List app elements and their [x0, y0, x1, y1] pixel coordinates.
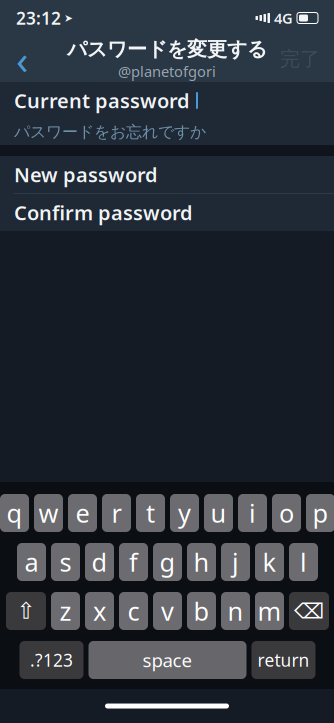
- button[interactable]: .?123: [19, 641, 83, 679]
- button[interactable]: d: [85, 543, 114, 581]
- button[interactable]: m: [255, 592, 284, 630]
- staticText: return: [257, 648, 309, 671]
- staticText: e: [75, 496, 89, 530]
- staticText: z: [59, 594, 71, 628]
- button[interactable]: h: [187, 543, 216, 581]
- staticText: パスワードをお忘れですか: [14, 122, 206, 142]
- button[interactable]: k: [255, 543, 284, 581]
- staticText: Confirm password: [14, 199, 193, 226]
- button[interactable]: c: [119, 592, 148, 630]
- button[interactable]: j: [221, 543, 250, 581]
- staticText: l: [300, 545, 307, 579]
- button[interactable]: v: [153, 592, 182, 630]
- button[interactable]: x: [85, 592, 114, 630]
- button[interactable]: Back: [0, 37, 44, 81]
- button[interactable]: t: [136, 494, 165, 532]
- staticText: ⇧: [16, 598, 35, 624]
- staticText: t: [146, 496, 155, 530]
- staticText: c: [127, 594, 139, 628]
- button[interactable]: 完了: [266, 37, 334, 81]
- button[interactable]: z: [51, 592, 80, 630]
- button[interactable]: i: [238, 494, 267, 532]
- button[interactable]: n: [221, 592, 250, 630]
- staticText: @planetofgori: [118, 61, 216, 81]
- button[interactable]: g: [153, 543, 182, 581]
- button[interactable]: p: [306, 494, 334, 532]
- button[interactable]: a: [17, 543, 46, 581]
- staticText: v: [161, 594, 174, 628]
- button[interactable]: space: [88, 641, 246, 679]
- staticText: ⌫: [294, 599, 324, 623]
- staticText: y: [178, 496, 191, 530]
- button[interactable]: o: [272, 494, 301, 532]
- button[interactable]: r: [102, 494, 131, 532]
- staticText: a: [24, 545, 38, 579]
- staticText: b: [193, 594, 209, 628]
- staticText: u: [210, 496, 226, 530]
- staticText: space: [142, 648, 192, 672]
- staticText: k: [262, 545, 276, 579]
- staticText: Current password: [14, 87, 190, 114]
- staticText: 4G: [274, 8, 293, 28]
- staticText: m: [257, 594, 281, 628]
- staticText: ➤: [64, 12, 73, 24]
- button[interactable]: q: [0, 494, 29, 532]
- button[interactable]: ⌫: [289, 592, 329, 630]
- staticText: 23:12: [16, 6, 61, 29]
- staticText: ‹: [16, 32, 28, 85]
- staticText: j: [232, 545, 239, 579]
- button[interactable]: return: [251, 641, 315, 679]
- button[interactable]: s: [51, 543, 80, 581]
- button[interactable]: ⇧: [6, 592, 46, 630]
- button[interactable]: f: [119, 543, 148, 581]
- staticText: h: [193, 545, 209, 579]
- staticText: .?123: [30, 648, 73, 671]
- button[interactable]: l: [289, 543, 318, 581]
- button[interactable]: New password: [0, 156, 334, 193]
- button[interactable]: u: [204, 494, 233, 532]
- staticText: p: [312, 496, 328, 530]
- staticText: o: [279, 496, 294, 530]
- staticText: s: [59, 545, 71, 579]
- staticText: g: [159, 545, 175, 579]
- staticText: q: [6, 496, 22, 530]
- staticText: d: [91, 545, 107, 579]
- staticText: r: [111, 496, 121, 530]
- button[interactable]: y: [170, 494, 199, 532]
- button[interactable]: パスワードをお忘れですか: [0, 119, 334, 145]
- button[interactable]: Confirm password: [0, 194, 334, 231]
- staticText: f: [129, 545, 138, 579]
- staticText: w: [38, 496, 58, 530]
- button[interactable]: Current password: [0, 82, 334, 119]
- staticText: パスワードを変更する: [67, 37, 267, 62]
- button[interactable]: b: [187, 592, 216, 630]
- button[interactable]: w: [34, 494, 63, 532]
- staticText: x: [93, 594, 106, 628]
- button[interactable]: e: [68, 494, 97, 532]
- staticText: 完了: [280, 47, 320, 71]
- staticText: n: [227, 594, 243, 628]
- staticText: New password: [14, 161, 158, 188]
- staticText: i: [249, 496, 256, 530]
